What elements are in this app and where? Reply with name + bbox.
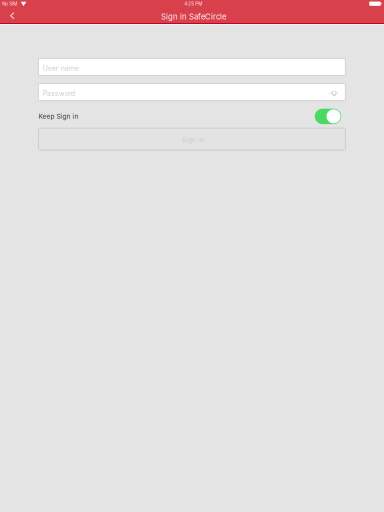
- staticText: Keep Sign in: [38, 112, 78, 120]
- button[interactable]: Show password: [329, 83, 345, 101]
- staticText: 4:25 PM: [184, 1, 202, 7]
- button[interactable]: Sign in: [38, 128, 345, 150]
- staticText: Password: [43, 89, 75, 98]
- button[interactable]: Back: [1, 9, 22, 23]
- staticText: Sign in: [182, 136, 204, 144]
- staticText: No SIM: [2, 1, 17, 7]
- staticText: User name: [43, 64, 79, 72]
- staticText: Sign in SafeCircle: [161, 12, 226, 21]
- button[interactable]: Keep Sign in: [315, 109, 341, 124]
